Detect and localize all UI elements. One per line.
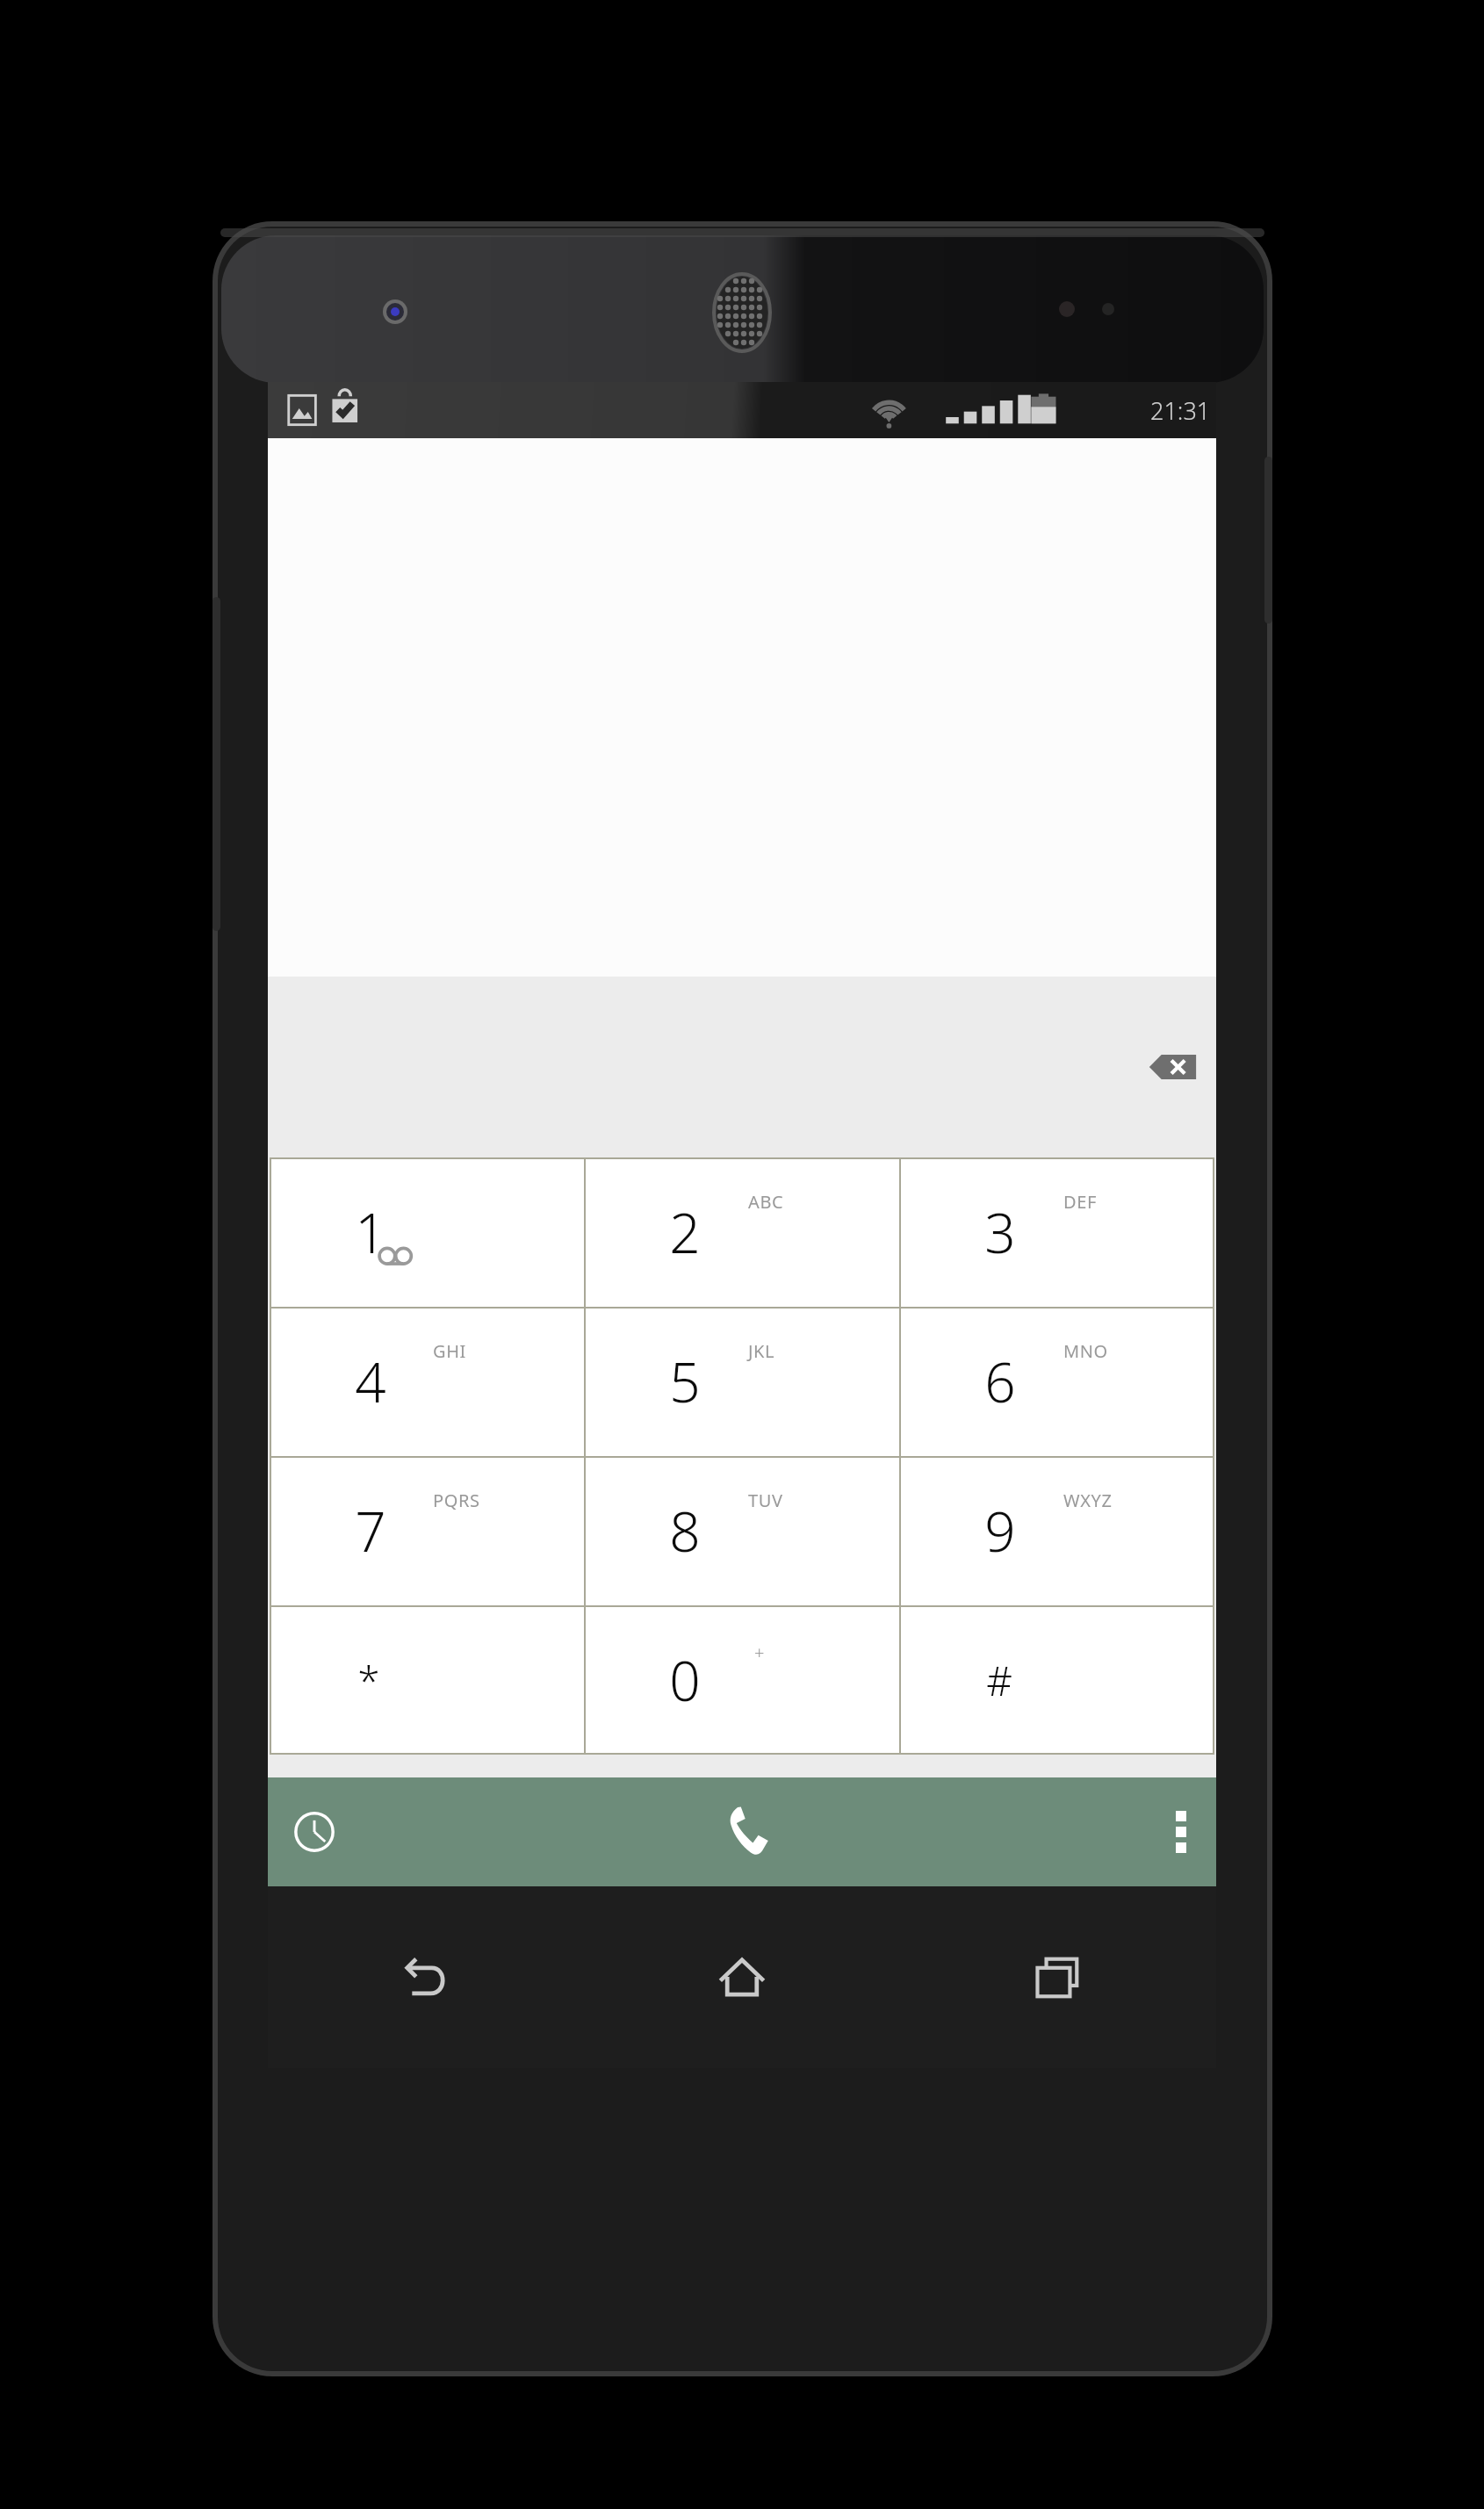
button[interactable]: 9 (899, 1456, 1214, 1605)
button[interactable]: Home (584, 1886, 900, 2068)
button[interactable]: 7 (270, 1456, 584, 1605)
button[interactable]: 4 (270, 1307, 584, 1456)
staticText: * (357, 1653, 380, 1708)
button[interactable]: * (270, 1605, 584, 1755)
button[interactable]: Dialpad (584, 1777, 900, 1886)
staticText: # (986, 1653, 1012, 1708)
button[interactable]: More options (900, 1777, 1216, 1886)
staticText: MNO (1063, 1339, 1108, 1363)
staticText: 2 (669, 1195, 701, 1269)
staticText: 0 (669, 1643, 701, 1717)
staticText: ABC (748, 1190, 784, 1214)
staticText: WXYZ (1063, 1489, 1113, 1512)
button[interactable]: 2 (584, 1157, 899, 1307)
staticText: GHI (433, 1339, 466, 1363)
staticText: 21:31 (1150, 394, 1211, 427)
staticText: 9 (984, 1494, 1016, 1568)
button[interactable] (268, 438, 1216, 977)
staticText: JKL (748, 1339, 775, 1363)
button[interactable]: 6 (899, 1307, 1214, 1456)
staticText: 3 (984, 1195, 1016, 1269)
staticText: + (754, 1640, 765, 1664)
staticText: 6 (984, 1345, 1016, 1418)
button[interactable]: 1 (270, 1157, 584, 1307)
staticText: PQRS (433, 1489, 480, 1512)
button[interactable]: Call history (268, 1777, 584, 1886)
staticText: 4 (355, 1345, 386, 1418)
button[interactable]: 8 (584, 1456, 899, 1605)
staticText: DEF (1063, 1190, 1097, 1214)
button[interactable]: Back (268, 1886, 584, 2068)
button[interactable]: 3 (899, 1157, 1214, 1307)
staticText: TUV (748, 1489, 783, 1512)
button[interactable]: 5 (584, 1307, 899, 1456)
button[interactable]: Backspace (1139, 1042, 1204, 1092)
button[interactable]: Recent apps (900, 1886, 1216, 2068)
staticText: 5 (669, 1345, 701, 1418)
staticText: 1 (355, 1195, 386, 1269)
button[interactable]: 0 (584, 1605, 899, 1755)
button[interactable]: # (899, 1605, 1214, 1755)
staticText: 8 (669, 1494, 701, 1568)
staticText: 7 (355, 1494, 386, 1568)
